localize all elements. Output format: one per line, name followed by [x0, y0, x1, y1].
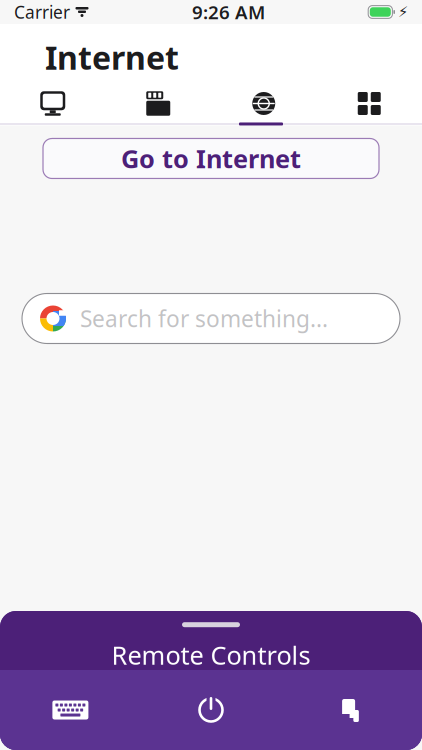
staticText: ⚡︎: [398, 4, 408, 20]
button[interactable]: Power: [141, 670, 281, 750]
staticText: Search for something...: [80, 303, 328, 333]
staticText: Internet: [45, 36, 179, 78]
button[interactable]: TV: [0, 84, 105, 122]
staticText: Carrier: [14, 0, 70, 23]
staticText: Remote Controls: [111, 638, 310, 672]
button[interactable]: Movies: [105, 84, 211, 122]
button[interactable]: Keyboard: [0, 670, 141, 750]
button[interactable]: Internet: [211, 84, 316, 122]
staticText: 9:26 AM: [192, 0, 265, 24]
staticText: Go to Internet: [121, 142, 301, 175]
button[interactable]: Pointer: [281, 670, 422, 750]
button[interactable]: Search for something...: [22, 293, 400, 343]
button[interactable]: Go to Internet: [43, 138, 379, 178]
button[interactable]: Apps: [316, 84, 422, 122]
